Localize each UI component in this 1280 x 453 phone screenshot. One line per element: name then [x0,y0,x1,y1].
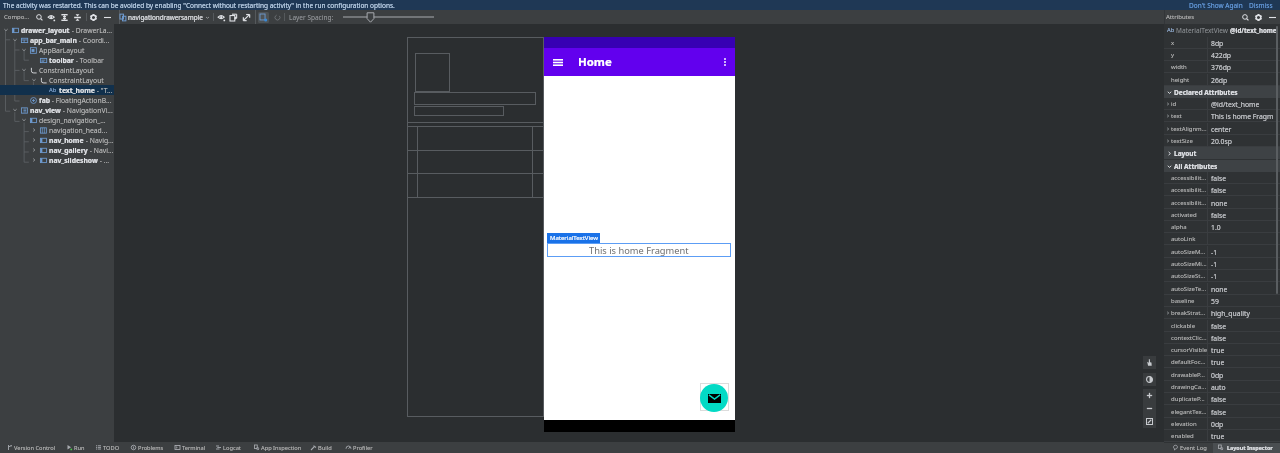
button[interactable]: Minimize attributes panel [1266,11,1278,23]
button[interactable]: app_bar_main [0,35,114,45]
staticText: width [1171,63,1187,71]
button[interactable]: TODO [94,442,122,453]
button[interactable]: autoSizeMi... [1164,258,1280,270]
button[interactable]: Open navigation drawer [549,48,567,76]
button[interactable]: drawingCa... [1164,381,1280,393]
staticText: Home [578,54,612,70]
button[interactable]: drawableP... [1164,369,1280,381]
button[interactable]: id [1164,98,1280,110]
button[interactable]: Toggle layer visibility [215,11,227,23]
button[interactable]: Expand all [58,11,70,23]
button[interactable]: Ab [0,85,114,95]
button[interactable]: Pop out [240,11,252,23]
button[interactable]: Terminal [173,442,208,453]
button[interactable]: fab [0,95,114,105]
staticText: Ab [49,86,57,94]
button[interactable]: height [1164,74,1280,86]
staticText: Layer Spacing: [289,13,334,22]
button[interactable]: This is home Fragment [547,243,731,257]
button[interactable]: autoSizeM... [1164,246,1280,258]
staticText: enabled [1171,432,1194,440]
staticText: 8dp [1211,39,1224,48]
button[interactable]: elegantTex... [1164,406,1280,418]
button[interactable]: Email [700,384,728,412]
button[interactable]: defaultFoc... [1164,356,1280,368]
button[interactable]: nav_gallery [0,145,114,155]
button[interactable]: textSize [1164,135,1280,147]
staticText: AppBarLayout [39,46,85,55]
button[interactable]: Build [309,442,334,453]
button[interactable]: elevation [1164,418,1280,430]
button[interactable]: Version Control [5,442,58,453]
button[interactable]: Layout [1164,147,1280,159]
button[interactable]: contextClic... [1164,332,1280,344]
button[interactable]: Run [65,442,87,453]
button[interactable]: width [1164,61,1280,73]
button[interactable]: Search attributes [1239,11,1251,23]
button[interactable]: Don't Show Again [1189,1,1243,10]
button[interactable]: enabled [1164,430,1280,442]
staticText: @id/text_home [1230,26,1277,34]
button[interactable]: accessibilit... [1164,184,1280,196]
button[interactable]: Search [33,11,45,23]
staticText: Profiler [353,444,373,452]
button[interactable]: Toggle 3D mode [258,12,269,23]
button[interactable]: Attributes settings [1252,11,1264,23]
button[interactable]: ConstraintLayout [0,75,114,85]
button[interactable]: Layout Inspector [1213,442,1280,453]
button[interactable]: ConstraintLayout [0,65,114,75]
button[interactable]: activated [1164,209,1280,221]
button[interactable]: drawer_layout [0,25,114,35]
button[interactable]: navigation_head... [0,125,114,135]
button[interactable]: nav_view [0,105,114,115]
button[interactable]: Settings [87,11,99,23]
staticText: 0dp [1211,371,1224,380]
button[interactable]: clickable [1164,320,1280,332]
button[interactable]: autoSizeTe... [1164,283,1280,295]
button[interactable]: Pan [1143,356,1156,369]
button[interactable]: Snapshot [227,11,239,23]
button[interactable]: Zoom out [1143,402,1156,415]
button[interactable]: Problems [129,442,166,453]
button[interactable]: Show layer visibility [45,11,57,23]
staticText: drawableP... [1171,371,1205,379]
button[interactable]: Declared Attributes [1164,86,1280,98]
button[interactable]: accessibilit... [1164,197,1280,209]
staticText: MaterialTextView [1176,26,1228,35]
button[interactable]: accessibilit... [1164,172,1280,184]
button[interactable]: design_navigation_... [0,115,114,125]
button[interactable]: Logcat [214,442,243,453]
button[interactable]: AppBarLayout [0,45,114,55]
staticText: design_navigation_... [39,116,106,125]
button[interactable]: baseline [1164,295,1280,307]
button[interactable]: Zoom to fit [1143,415,1156,428]
button[interactable]: Zoom in [1143,389,1156,402]
button[interactable]: App Inspection [252,442,304,453]
button[interactable]: cursorVisible [1164,344,1280,356]
staticText: MaterialTextView [550,234,598,242]
button[interactable]: Dismiss [1249,1,1273,10]
button[interactable]: All Attributes [1164,160,1280,172]
button[interactable]: alpha [1164,221,1280,233]
button[interactable]: duplicateP... [1164,393,1280,405]
button[interactable]: x [1164,37,1280,49]
button[interactable]: More options [714,48,735,76]
button[interactable]: Reset view [271,11,283,23]
button[interactable]: autoSizeSt... [1164,270,1280,282]
button[interactable]: breakStrat... [1164,307,1280,319]
button[interactable]: Collapse all [71,11,83,23]
button[interactable]: toolbar [0,55,114,65]
button[interactable]: Toggle contrast [1143,373,1156,386]
button[interactable]: autoLink [1164,233,1280,245]
button[interactable]: Minimize [101,11,113,23]
staticText: -1 [1211,272,1218,281]
button[interactable]: text [1164,110,1280,122]
button[interactable]: Event Log [1171,442,1209,453]
button[interactable]: nav_home [0,135,114,145]
staticText: 59 [1211,297,1219,306]
staticText: - NavigationVi... [61,106,113,115]
button[interactable]: Profiler [344,442,375,453]
button[interactable]: y [1164,49,1280,61]
button[interactable]: textAlignm... [1164,123,1280,135]
button[interactable]: nav_slideshow [0,155,114,165]
